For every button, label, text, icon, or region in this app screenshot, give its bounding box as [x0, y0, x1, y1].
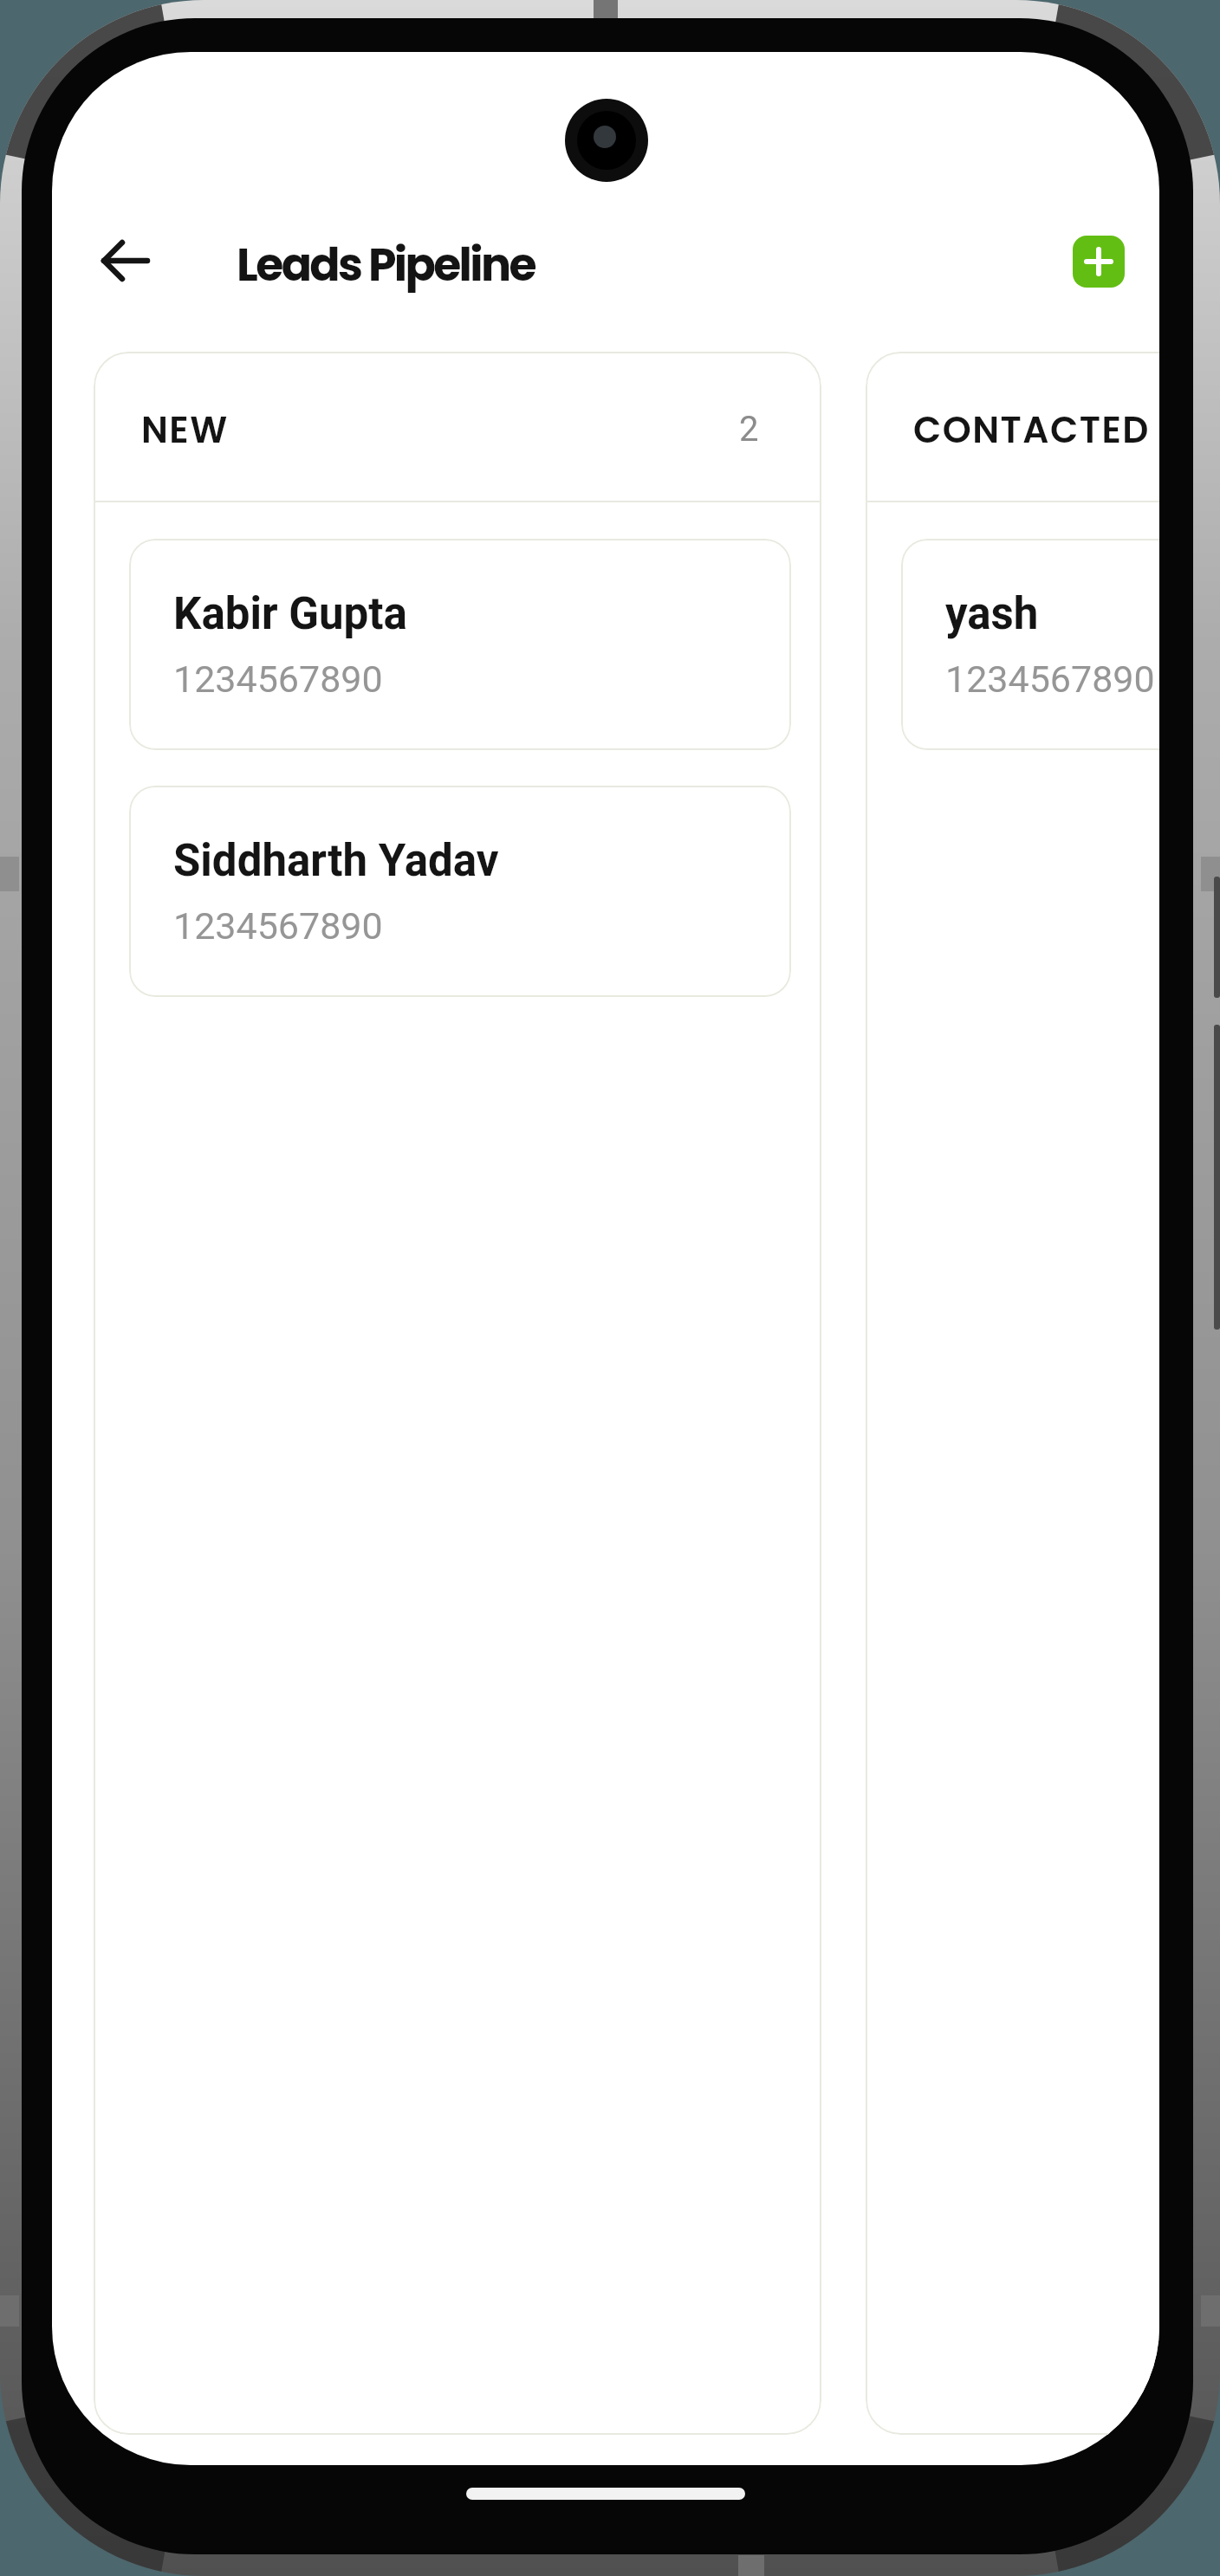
staticText: 1234567890	[945, 657, 1155, 701]
button[interactable]	[1073, 236, 1125, 288]
staticText: Kabir Gupta	[173, 588, 407, 640]
button[interactable]	[466, 2488, 745, 2500]
staticText: Leads Pipeline	[237, 233, 535, 296]
button[interactable]: yash	[901, 539, 1159, 750]
staticText: yash	[945, 588, 1039, 640]
staticText: CONTACTED	[913, 405, 1150, 456]
button[interactable]: Siddharth Yadav	[129, 786, 791, 997]
button[interactable]	[95, 231, 154, 290]
staticText: 1234567890	[173, 904, 383, 948]
staticText: 1234567890	[173, 657, 383, 701]
button[interactable]: Kabir Gupta	[129, 539, 791, 750]
staticText: NEW	[141, 405, 229, 456]
staticText: Siddharth Yadav	[173, 835, 499, 887]
staticText: 2	[739, 409, 759, 450]
